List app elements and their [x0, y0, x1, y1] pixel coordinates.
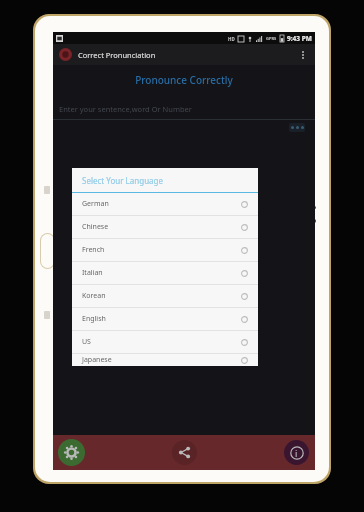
button[interactable]: Share [172, 440, 197, 465]
staticText: Enter your sentence,word Or Number [59, 104, 192, 114]
button[interactable]: German [72, 193, 258, 215]
staticText: English [82, 314, 106, 324]
staticText: Chinese [82, 222, 109, 232]
staticText: Italian [82, 268, 103, 278]
staticText: US [82, 337, 91, 347]
button[interactable]: More options [289, 123, 305, 132]
button[interactable]: English [72, 308, 258, 330]
staticText: HD [228, 36, 235, 42]
button[interactable]: US [72, 331, 258, 353]
staticText: French [82, 245, 105, 255]
staticText: German [82, 199, 109, 209]
button[interactable]: Info [284, 440, 309, 465]
button[interactable]: More options [297, 46, 309, 64]
staticText: GPRS [266, 36, 277, 41]
button[interactable]: Korean [72, 285, 258, 307]
staticText: Pronounce Correctly [53, 73, 315, 87]
staticText: Japanese [82, 355, 112, 365]
button[interactable]: Chinese [72, 216, 258, 238]
staticText: Korean [82, 291, 106, 301]
staticText: 9:43 PM [287, 34, 312, 43]
staticText: i [295, 447, 298, 459]
staticText: Select Your Language [82, 175, 163, 186]
button[interactable]: Settings [58, 439, 85, 466]
button[interactable]: French [72, 239, 258, 261]
staticText: Correct Pronunciation [78, 50, 156, 60]
button[interactable]: Italian [72, 262, 258, 284]
button[interactable]: Japanese [72, 354, 258, 366]
